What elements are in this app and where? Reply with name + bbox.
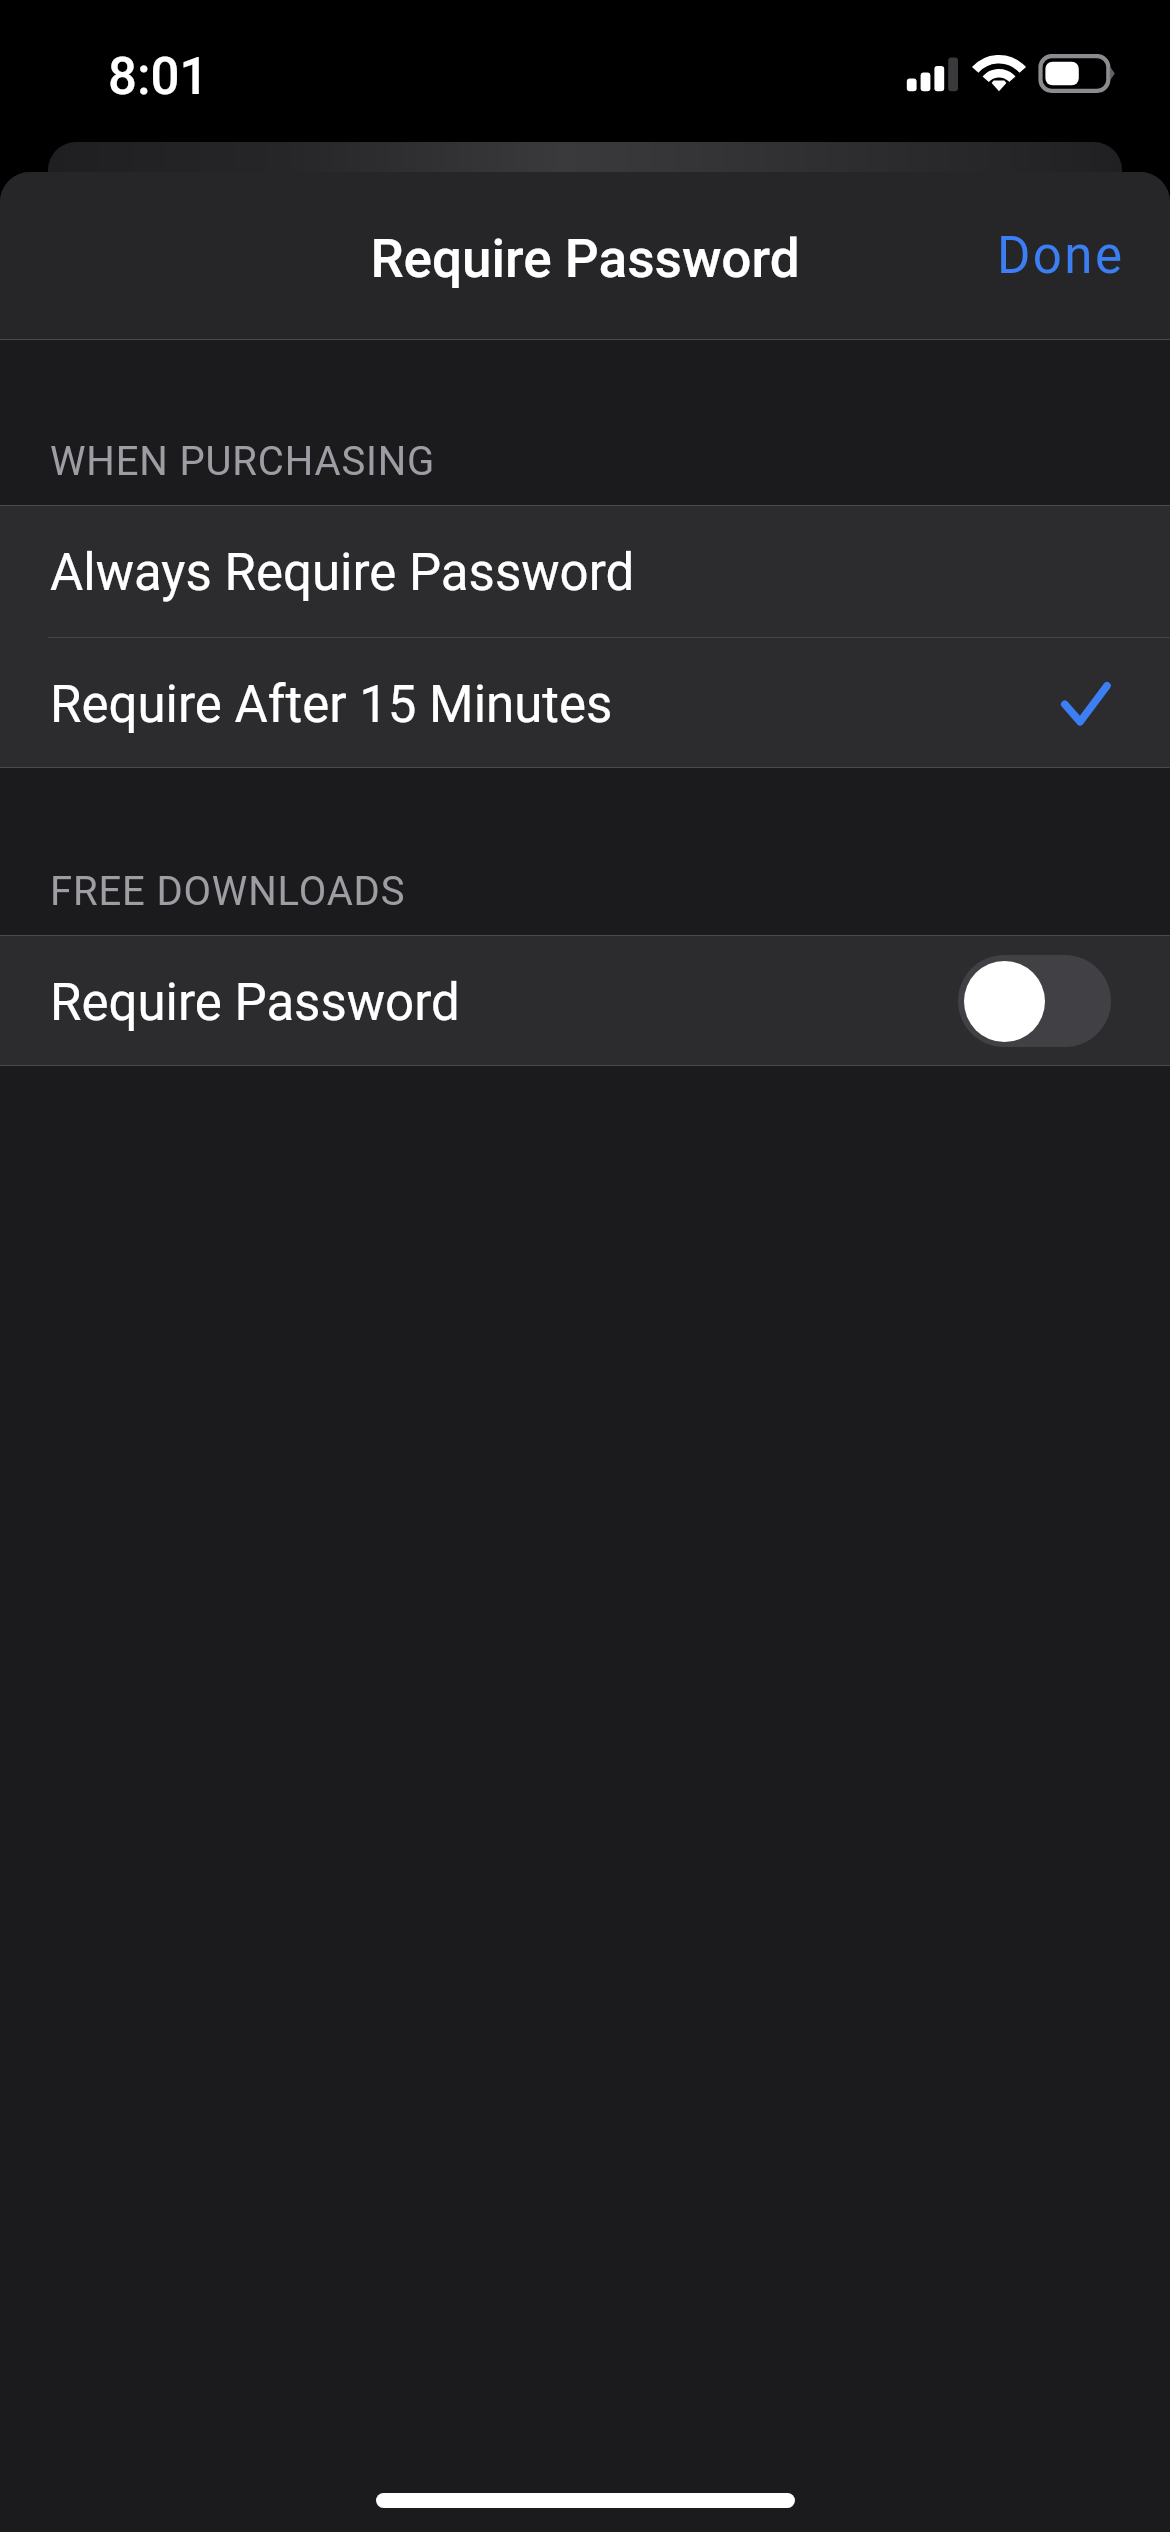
button[interactable]: Require Password, off bbox=[958, 955, 1111, 1047]
button[interactable]: Done bbox=[948, 192, 1170, 320]
other: Selected bbox=[1061, 682, 1111, 726]
staticText: WHEN PURCHASING bbox=[50, 438, 436, 485]
button[interactable]: Require After 15 Minutes bbox=[0, 637, 1170, 768]
staticText: FREE DOWNLOADS bbox=[50, 868, 406, 915]
staticText: 8:01 bbox=[108, 47, 209, 107]
staticText: Always Require Password bbox=[50, 543, 635, 603]
staticText: Require After 15 Minutes bbox=[50, 675, 613, 735]
button[interactable]: Always Require Password bbox=[0, 505, 1170, 636]
button[interactable]: Require Password bbox=[0, 935, 1170, 1066]
staticText: Require Password bbox=[370, 228, 800, 290]
staticText: Done bbox=[997, 226, 1125, 286]
staticText: Require Password bbox=[50, 973, 460, 1033]
